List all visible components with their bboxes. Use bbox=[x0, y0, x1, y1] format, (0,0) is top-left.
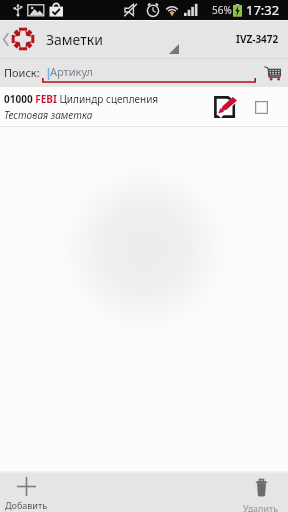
button[interactable]: Редактировать bbox=[209, 91, 241, 123]
staticText: 17:32 bbox=[246, 1, 280, 19]
button[interactable]: Добавить bbox=[0, 471, 52, 512]
staticText: Артикул bbox=[50, 64, 93, 79]
button[interactable]: Артикул bbox=[42, 61, 256, 85]
staticText: 56% bbox=[212, 3, 232, 17]
button[interactable]: 01000 FEBI Цилиндр сцепления bbox=[0, 87, 288, 127]
staticText: 01000 FEBI Цилиндр сцепления bbox=[4, 92, 159, 106]
button[interactable]: Удалить bbox=[235, 471, 287, 512]
staticText: Добавить bbox=[5, 499, 48, 511]
button[interactable]: Выбрать bbox=[248, 94, 274, 120]
staticText: Тестовая заметка bbox=[4, 108, 93, 122]
staticText: Поиск: bbox=[4, 65, 40, 80]
button[interactable]: Заметки bbox=[0, 20, 288, 58]
button[interactable]: Корзина bbox=[258, 59, 286, 87]
staticText: IVZ-3472 bbox=[236, 32, 279, 46]
staticText: Удалить bbox=[243, 502, 279, 512]
staticText: Заметки bbox=[46, 30, 103, 49]
